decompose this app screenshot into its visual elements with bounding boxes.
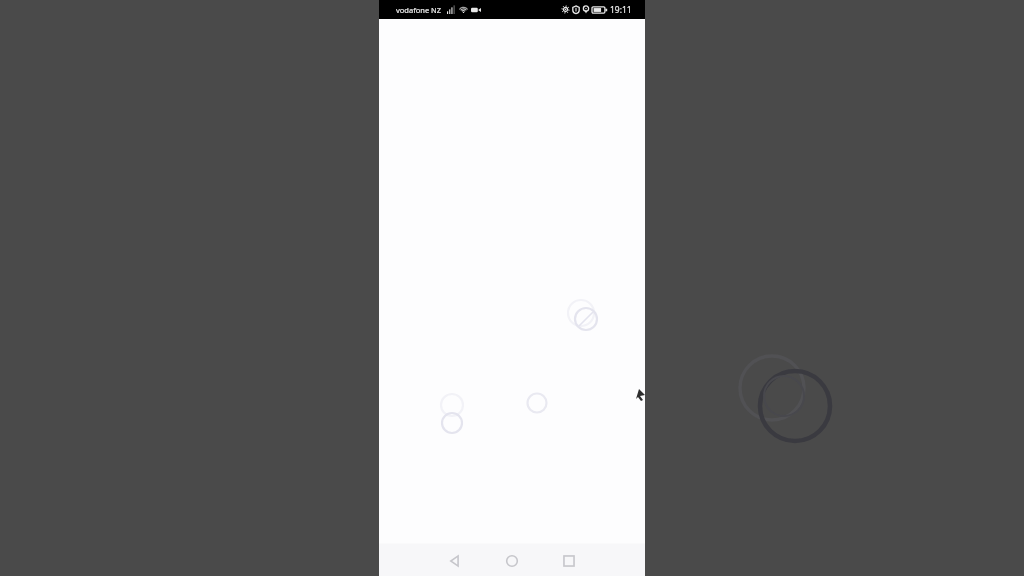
staticText: 19:11 <box>610 4 632 16</box>
staticText: vodafone NZ <box>396 5 442 15</box>
button[interactable]: Home <box>491 545 533 576</box>
button[interactable]: Back <box>434 545 476 576</box>
button[interactable]: Recent apps <box>548 545 590 576</box>
